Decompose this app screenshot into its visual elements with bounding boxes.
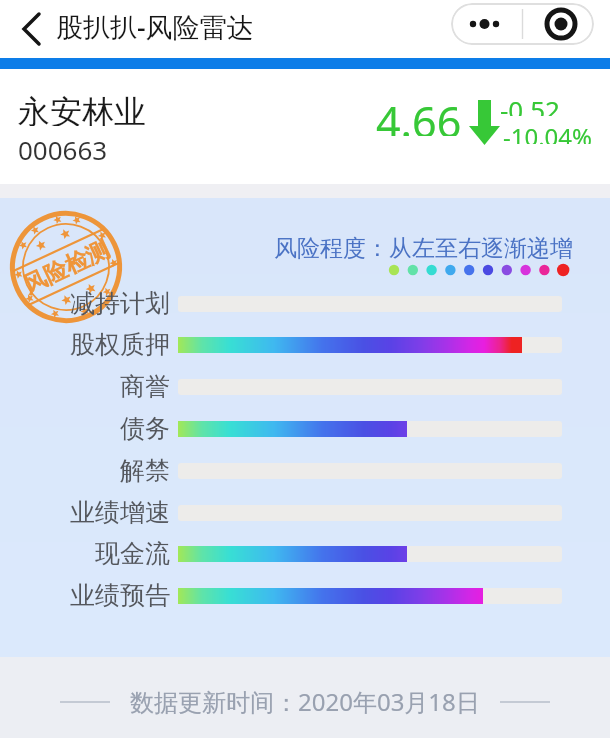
staticText: 风险检测 [18, 235, 114, 300]
button[interactable] [451, 3, 522, 45]
button[interactable]: 业绩增速 [0, 495, 575, 531]
staticText: 债务 [120, 413, 170, 441]
staticText: 风险程度：从左至右逐渐递增 [274, 234, 573, 262]
staticText: -0.52 [500, 92, 560, 116]
staticText: 永安林业 [18, 92, 146, 126]
staticText: 减持计划 [70, 288, 170, 316]
staticText: -10.04% [503, 120, 593, 144]
button[interactable] [10, 11, 54, 47]
staticText: 股权质押 [70, 329, 170, 357]
staticText: 业绩预告 [70, 580, 170, 608]
staticText: 数据更新时间：2020年03月18日 [130, 685, 480, 718]
staticText: 商誉 [120, 371, 170, 399]
staticText: 4.66 [376, 92, 462, 136]
staticText: 业绩增速 [70, 497, 170, 525]
button[interactable]: 商誉 [0, 369, 575, 405]
button[interactable]: 解禁 [0, 453, 575, 489]
button[interactable]: 股权质押 [0, 327, 575, 363]
staticText: 000663 [18, 132, 108, 160]
button[interactable]: 债务 [0, 411, 575, 447]
staticText: 解禁 [120, 455, 170, 483]
button[interactable] [522, 3, 594, 45]
staticText: 股扒扒-风险雷达 [56, 8, 254, 44]
button[interactable]: 业绩预告 [0, 578, 575, 614]
staticText: 现金流 [95, 538, 170, 566]
button[interactable]: 减持计划 [0, 286, 575, 322]
button[interactable]: 数据更新时间：2020年03月18日 [0, 657, 610, 738]
button[interactable]: 永安林业 [0, 69, 610, 184]
button[interactable]: 现金流 [0, 536, 575, 572]
